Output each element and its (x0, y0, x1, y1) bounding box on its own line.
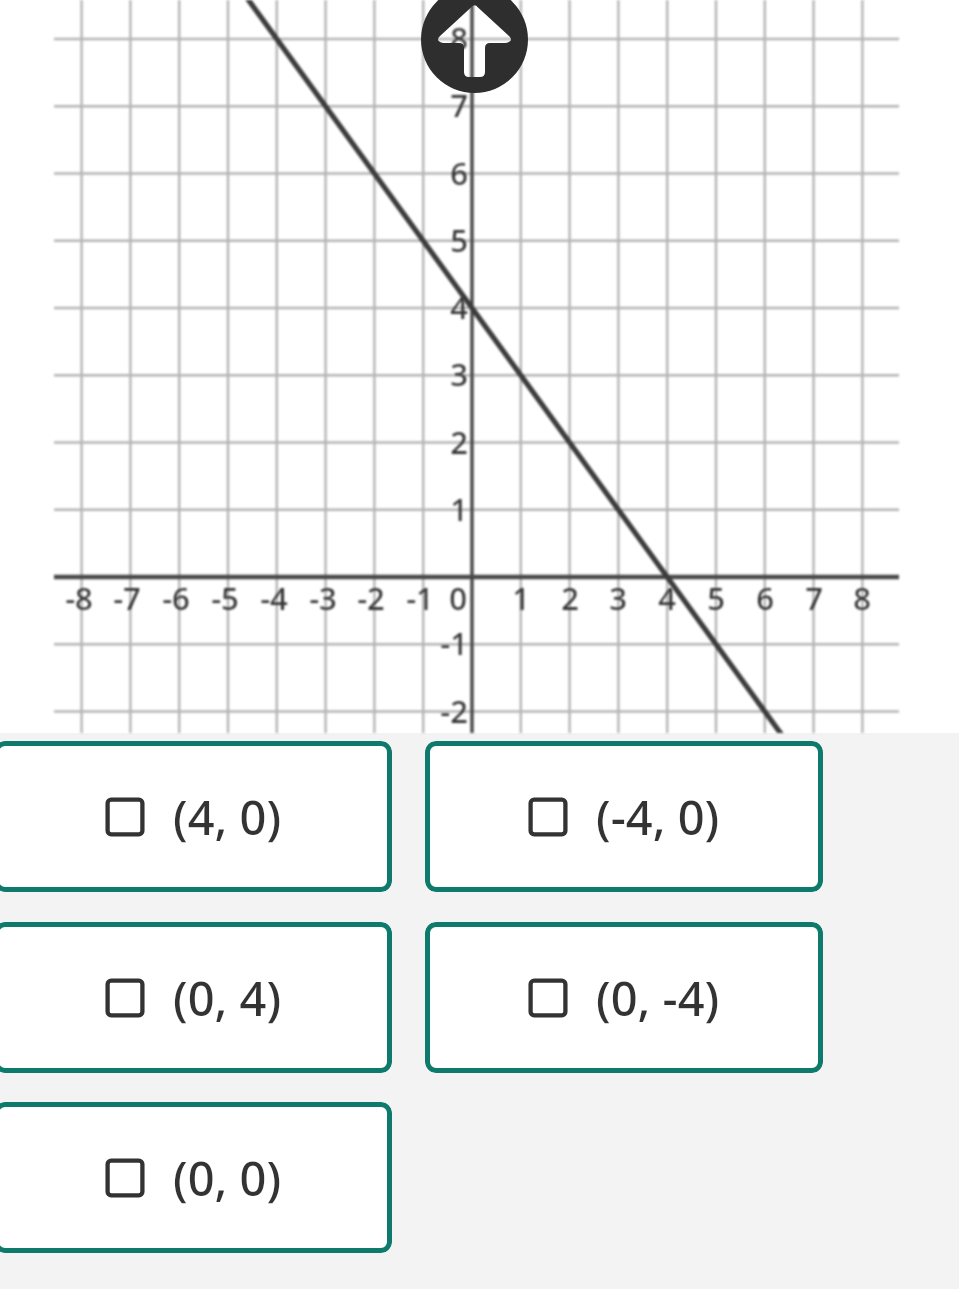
staticText: 8 (408, 17, 468, 59)
staticText: -8 (49, 577, 109, 619)
staticText: 1 (491, 577, 551, 619)
staticText: (0, 4) (173, 966, 282, 1030)
staticText: (0, 0) (173, 1146, 282, 1210)
staticText: -4 (244, 577, 304, 619)
button[interactable]: (0, 0) (0, 1102, 392, 1253)
staticText: -2 (341, 577, 401, 619)
staticText: 6 (735, 577, 795, 619)
staticText: 3 (588, 577, 648, 619)
staticText: 4 (408, 286, 468, 328)
staticText: 0 (407, 577, 467, 619)
staticText: 4 (637, 577, 697, 619)
staticText: -1 (390, 577, 450, 619)
staticText: 7 (784, 577, 844, 619)
staticText: (4, 0) (173, 785, 282, 849)
staticText: -5 (195, 577, 255, 619)
button[interactable]: (0, 4) (0, 922, 392, 1073)
button[interactable]: Scroll to top (421, 0, 528, 93)
staticText: -2 (408, 690, 468, 732)
staticText: 2 (408, 421, 468, 463)
staticText: (0, -4) (596, 966, 720, 1030)
staticText: -6 (146, 577, 206, 619)
staticText: 8 (832, 577, 892, 619)
staticText: 6 (408, 152, 468, 194)
button[interactable]: (4, 0) (0, 741, 392, 892)
staticText: -1 (408, 622, 468, 664)
staticText: 2 (540, 577, 600, 619)
staticText: 1 (408, 488, 468, 530)
staticText: (-4, 0) (596, 785, 720, 849)
button[interactable]: (-4, 0) (425, 741, 823, 892)
staticText: 5 (408, 219, 468, 261)
staticText: 5 (686, 577, 746, 619)
staticText: -7 (97, 577, 157, 619)
staticText: 3 (408, 353, 468, 395)
button[interactable]: (0, -4) (425, 922, 823, 1073)
staticText: 7 (408, 84, 468, 126)
staticText: -3 (293, 577, 353, 619)
